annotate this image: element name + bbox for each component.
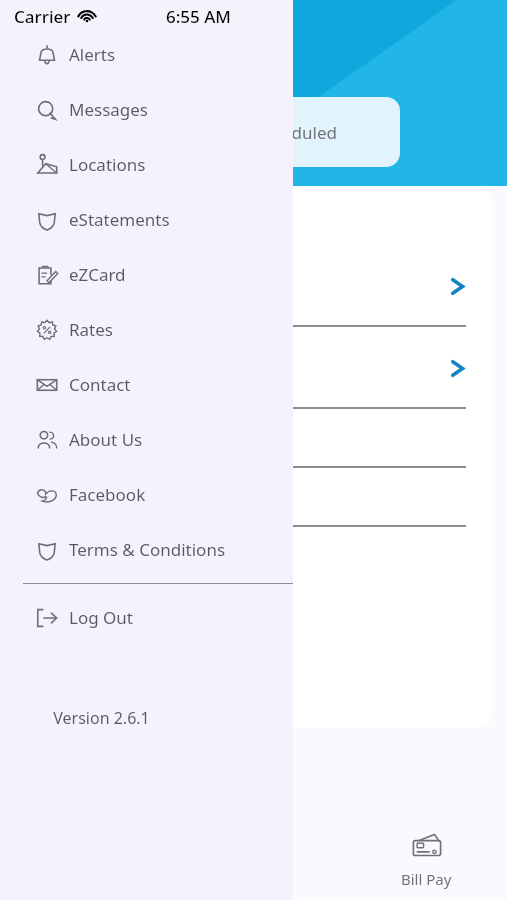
button[interactable]: Open bbox=[140, 245, 492, 327]
staticText: Version 2.6.1 bbox=[53, 707, 150, 729]
staticText: Scheduled bbox=[254, 121, 337, 144]
other: Open bbox=[449, 278, 466, 295]
button[interactable]: About Us bbox=[0, 412, 293, 467]
button[interactable]: Deposit bbox=[185, 818, 346, 900]
staticText: Messages bbox=[69, 98, 149, 121]
staticText: Carrier bbox=[14, 5, 71, 28]
staticText: Contact bbox=[69, 373, 131, 396]
button[interactable]: eZCard bbox=[0, 247, 293, 302]
button[interactable]: Terms & Conditions bbox=[0, 522, 293, 577]
button[interactable]: Alerts bbox=[0, 27, 293, 82]
staticText: Terms & Conditions bbox=[69, 538, 226, 561]
button[interactable]: Log Out bbox=[0, 590, 293, 645]
staticText: Rates bbox=[69, 318, 113, 341]
button[interactable]: Contact bbox=[0, 357, 293, 412]
button[interactable]: Open bbox=[140, 327, 492, 409]
staticText: eStatements bbox=[69, 208, 170, 231]
staticText: Alerts bbox=[69, 43, 116, 66]
button[interactable]: Messages bbox=[0, 82, 293, 137]
button[interactable]: Locations bbox=[0, 137, 293, 192]
staticText: Bill Pay bbox=[401, 869, 452, 889]
button[interactable]: Scheduled bbox=[190, 97, 400, 167]
staticText: 6:55 AM bbox=[166, 5, 231, 28]
button[interactable]: Facebook bbox=[0, 467, 293, 522]
button[interactable]: Rates bbox=[0, 302, 293, 357]
staticText: About Us bbox=[69, 428, 143, 451]
button[interactable]: eStatements bbox=[0, 192, 293, 247]
staticText: Facebook bbox=[69, 483, 146, 506]
other: Bill Pay bbox=[410, 829, 444, 863]
staticText: Locations bbox=[69, 153, 146, 176]
staticText: eZCard bbox=[69, 263, 126, 286]
staticText: Log Out bbox=[69, 606, 133, 629]
other: Open bbox=[449, 360, 466, 377]
button[interactable]: Bill Pay bbox=[346, 818, 507, 900]
